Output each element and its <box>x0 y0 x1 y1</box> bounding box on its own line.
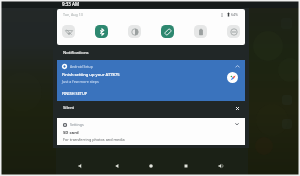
button[interactable]: Cast <box>227 25 240 38</box>
button[interactable]: Volume down <box>74 159 87 172</box>
button[interactable]: Clear all <box>234 105 240 111</box>
button[interactable]: Settings <box>57 118 245 145</box>
staticText: 9:33 AM <box>62 1 80 7</box>
button[interactable]: More options <box>220 13 224 17</box>
button[interactable]: Open setup <box>227 72 238 83</box>
staticText: Finish setting up your AT7875 <box>62 72 120 78</box>
button[interactable]: Recents <box>179 159 192 172</box>
button[interactable]: Auto rotate <box>161 25 174 38</box>
staticText: Android Setup <box>70 64 93 69</box>
staticText: Tue, Aug 13 <box>63 12 83 17</box>
button[interactable]: Collapse <box>234 63 241 70</box>
staticText: Settings <box>70 122 84 127</box>
staticText: Silent <box>63 105 75 111</box>
staticText: 64% <box>231 12 239 17</box>
button[interactable]: Battery saver <box>194 25 207 38</box>
button[interactable]: Expand <box>234 121 240 127</box>
button[interactable]: Wi-Fi <box>62 25 75 38</box>
button[interactable]: Back <box>110 159 123 172</box>
button[interactable]: FINISH SETUP <box>62 91 88 96</box>
button[interactable]: Bluetooth <box>95 25 108 38</box>
staticText: For transferring photos and media <box>63 137 125 142</box>
staticText: Notifications <box>63 50 89 56</box>
button[interactable]: Volume up <box>214 159 227 172</box>
button[interactable]: Android Setup <box>57 60 245 101</box>
staticText: SD card <box>63 130 79 136</box>
staticText: Just a few more steps <box>62 79 99 84</box>
button[interactable]: Dark theme <box>128 25 141 38</box>
button[interactable]: Home <box>144 159 157 172</box>
